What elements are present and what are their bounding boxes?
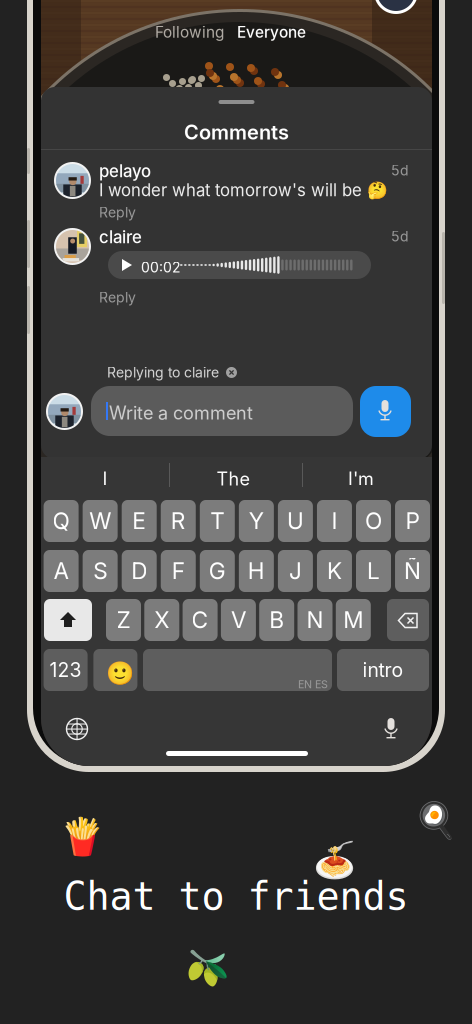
staticText: Following (155, 23, 224, 42)
staticText: I (102, 468, 107, 490)
button[interactable]: I (317, 500, 352, 542)
button[interactable]: Reply (99, 204, 136, 221)
staticText: V (231, 606, 246, 634)
button[interactable]: X (144, 599, 179, 641)
staticText: O (365, 507, 382, 535)
staticText: The (216, 468, 249, 490)
staticText: I wonder what tomorrow's will be 🤔 (99, 180, 388, 200)
button[interactable]: J (278, 550, 313, 592)
staticText: Replying to claire (107, 364, 219, 381)
staticText: 5d (391, 228, 409, 245)
button[interactable]: B (259, 599, 294, 641)
staticText: Write a comment (109, 402, 253, 424)
staticText: 🍟 (60, 816, 105, 858)
staticText: Z (116, 606, 130, 634)
staticText: G (209, 557, 226, 585)
staticText: H (248, 557, 265, 585)
staticText: J (289, 557, 302, 585)
button[interactable]: W (83, 500, 118, 542)
staticText: EN ES (298, 678, 328, 691)
staticText: I'm (348, 468, 374, 490)
staticText: Comments (184, 120, 289, 144)
staticText: M (343, 606, 363, 634)
button[interactable]: M (336, 599, 371, 641)
button[interactable]: Space (143, 649, 332, 691)
staticText: B (269, 606, 284, 634)
button[interactable]: C (183, 599, 218, 641)
staticText: 00:02 (141, 259, 181, 276)
button[interactable]: Switch keyboard (66, 718, 88, 740)
button[interactable]: Delete (387, 599, 429, 641)
button[interactable]: 123 (44, 649, 88, 691)
staticText: Reply (99, 204, 136, 221)
staticText: 🫒 (186, 948, 229, 989)
staticText: K (327, 557, 342, 585)
button[interactable]: Record voice message (360, 386, 411, 437)
staticText: A (54, 557, 69, 585)
staticText: S (93, 557, 107, 585)
button[interactable]: Q (44, 500, 79, 542)
button[interactable]: H (239, 550, 274, 592)
button[interactable]: L (356, 550, 391, 592)
staticText: C (192, 606, 209, 634)
staticText: Everyone (237, 23, 306, 42)
staticText: 🍝 (313, 840, 356, 881)
staticText: X (154, 606, 169, 634)
staticText: Chat to friends (63, 874, 408, 919)
button[interactable]: Y (239, 500, 274, 542)
button[interactable]: Reply (99, 289, 136, 306)
staticText: 🙂 (106, 660, 134, 687)
staticText: R (171, 507, 186, 535)
button[interactable]: Everyone (237, 23, 306, 42)
button[interactable]: Cancel reply (226, 367, 237, 378)
staticText: I (331, 507, 337, 535)
button[interactable]: P (395, 500, 430, 542)
staticText: Ñ (404, 557, 421, 585)
button[interactable]: O (356, 500, 391, 542)
button[interactable]: Write a comment (91, 386, 353, 436)
staticText: W (89, 507, 111, 535)
button[interactable]: K (317, 550, 352, 592)
staticText: P (406, 507, 420, 535)
staticText: U (287, 507, 304, 535)
button[interactable]: V (221, 599, 256, 641)
button[interactable]: G (200, 550, 235, 592)
button[interactable]: Z (106, 599, 141, 641)
staticText: L (367, 557, 380, 585)
button[interactable]: Following (155, 23, 224, 42)
button[interactable]: D (122, 550, 157, 592)
button[interactable]: Ñ (395, 550, 430, 592)
staticText: D (131, 557, 147, 585)
staticText: intro (362, 658, 403, 682)
staticText: F (172, 557, 185, 585)
staticText: claire (99, 227, 142, 247)
button[interactable]: S (83, 550, 118, 592)
button[interactable]: Dictate (383, 718, 399, 740)
staticText: N (306, 606, 323, 634)
staticText: T (210, 507, 224, 535)
button[interactable]: R (161, 500, 196, 542)
staticText: Q (53, 507, 70, 535)
staticText: 5d (391, 162, 409, 179)
button[interactable]: E (122, 500, 157, 542)
staticText: 🍳 (414, 800, 457, 841)
button[interactable]: F (161, 550, 196, 592)
button[interactable]: Shift (44, 599, 92, 641)
staticText: E (132, 507, 146, 535)
button[interactable]: intro (337, 649, 429, 691)
staticText: 123 (50, 658, 82, 682)
staticText: Y (249, 507, 264, 535)
button[interactable]: U (278, 500, 313, 542)
button[interactable]: N (297, 599, 332, 641)
staticText: pelayo (99, 161, 151, 181)
button[interactable]: Emoji (93, 649, 137, 691)
button[interactable]: T (200, 500, 235, 542)
staticText: Reply (99, 289, 136, 306)
button[interactable]: A (44, 550, 79, 592)
